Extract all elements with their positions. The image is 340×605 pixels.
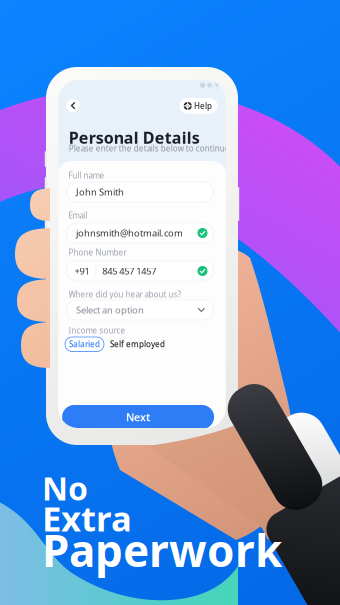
staticText: Salaried: [69, 339, 100, 349]
staticText: Next: [126, 410, 150, 424]
button[interactable]: Self employed: [104, 337, 171, 351]
staticText: Email: [68, 210, 87, 221]
button[interactable]: Next: [62, 405, 214, 429]
button[interactable]: Select an option: [66, 300, 213, 320]
staticText: Paperwork: [42, 521, 282, 579]
staticText: +91: [74, 265, 89, 277]
staticText: johnsmith@hotmail.com: [76, 227, 183, 239]
staticText: Personal Details: [69, 127, 200, 148]
staticText: Income source: [68, 325, 125, 336]
button[interactable]: Help: [179, 98, 217, 114]
staticText: Extra: [42, 495, 132, 541]
button[interactable]: Salaried: [65, 337, 104, 351]
button[interactable]: Back: [66, 99, 80, 113]
staticText: 845 457 1457: [102, 265, 156, 277]
staticText: Where did you hear about us?: [68, 289, 180, 300]
staticText: Help: [194, 101, 212, 111]
staticText: Select an option: [76, 304, 144, 316]
staticText: No: [42, 467, 88, 509]
staticText: Self employed: [110, 339, 165, 349]
staticText: Please enter the details below to contin…: [69, 143, 230, 154]
staticText: Phone Number: [68, 247, 126, 258]
staticText: John Smith: [76, 186, 124, 198]
staticText: Full name: [68, 170, 104, 181]
